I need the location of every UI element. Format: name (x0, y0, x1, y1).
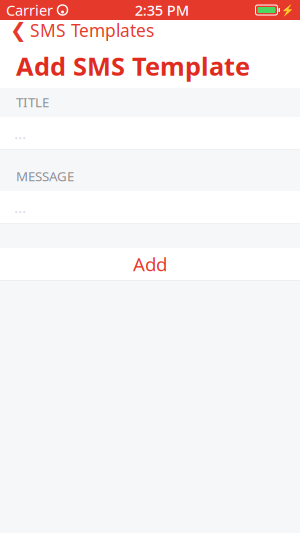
staticText: 2:35 PM (135, 0, 189, 20)
staticText: ❮ (10, 19, 27, 41)
staticText: Carrier (6, 0, 53, 20)
staticText: Add SMS Template (16, 49, 250, 83)
staticText: TITLE (16, 93, 49, 111)
staticText: ⚡ (281, 4, 294, 16)
staticText: MESSAGE (16, 167, 74, 185)
button[interactable]: ❮ (0, 17, 300, 43)
staticText: Add (133, 252, 167, 276)
staticText: SMS Templates (30, 19, 154, 42)
staticText: ... (14, 122, 26, 144)
staticText: ... (14, 196, 26, 218)
button[interactable]: Add (0, 248, 300, 280)
